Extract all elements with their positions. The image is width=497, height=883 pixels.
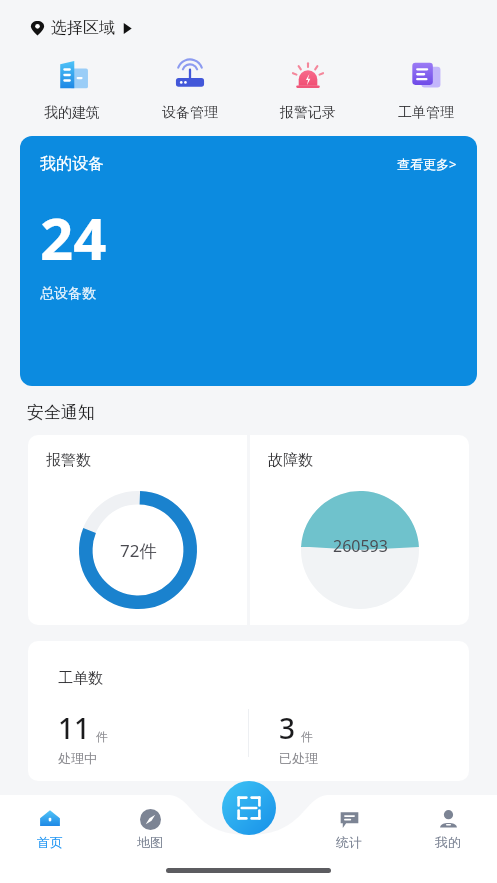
staticText: 24 [40,198,107,277]
staticText: 总设备数 [40,285,96,303]
staticText: 统计 [336,834,362,850]
staticText: 查看更多> [397,155,457,173]
button[interactable]: Scan QR code [222,781,276,835]
staticText: 处理中 [58,750,97,766]
staticText: 3 [279,709,296,747]
staticText: 地图 [137,834,163,850]
button[interactable]: 我的 [398,805,497,852]
button[interactable]: 工单数 [28,641,469,781]
staticText: 我的建筑 [44,104,100,122]
button[interactable]: 地图 [100,805,200,852]
staticText: 选择区域 [51,18,115,38]
button[interactable]: 我的建筑 [12,50,131,124]
button[interactable]: 统计 [299,805,398,852]
button[interactable]: 工单管理 [367,50,485,124]
staticText: 报警数 [46,451,91,470]
button[interactable]: 报警数 [28,435,247,625]
staticText: 72件 [120,539,157,562]
button[interactable]: 报警记录 [249,50,367,124]
button[interactable]: 我的设备 [20,136,477,386]
staticText: 已处理 [279,750,318,766]
staticText: 报警记录 [280,104,336,122]
staticText: 设备管理 [162,104,218,122]
button[interactable]: 设备管理 [131,50,249,124]
staticText: 首页 [37,834,63,850]
staticText: 我的设备 [40,154,104,174]
staticText: 故障数 [268,451,313,470]
staticText: 11 [58,709,91,747]
button[interactable]: 故障数 [250,435,469,625]
button[interactable]: 选择区域 [30,18,133,38]
staticText: 安全通知 [27,402,95,423]
button[interactable]: 首页 [0,805,100,852]
staticText: 260593 [333,535,388,557]
staticText: 我的 [435,834,461,850]
staticText: 工单数 [58,669,103,688]
staticText: 工单管理 [398,104,454,122]
staticText: 件 [96,729,108,744]
staticText: 件 [301,729,313,744]
